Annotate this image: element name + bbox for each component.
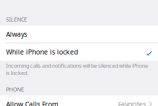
staticText: Incoming calls and notifications will be…: [6, 62, 148, 76]
button[interactable]: While iPhone is locked: [0, 43, 158, 61]
button[interactable]: Allow Calls From: [0, 95, 158, 106]
staticText: Favorites: [118, 100, 146, 106]
staticText: SILENCE: [6, 16, 27, 23]
button[interactable]: Always: [0, 25, 158, 43]
staticText: While iPhone is locked: [6, 48, 78, 56]
staticText: Allow Calls From: [6, 100, 58, 106]
staticText: Always: [6, 30, 27, 39]
staticText: PHONE: [6, 86, 24, 93]
